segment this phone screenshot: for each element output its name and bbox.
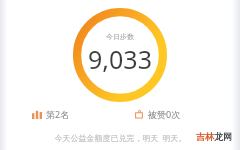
staticText: 龙网: [214, 131, 232, 142]
staticText: 第2名: [46, 108, 70, 120]
button[interactable]: 第2名: [32, 108, 120, 120]
staticText: 9,033: [88, 42, 152, 76]
staticText: 被赞0次: [148, 108, 181, 120]
button[interactable]: 今日步数 9,033: [73, 8, 167, 102]
staticText: 吉林: [196, 131, 214, 142]
staticText: 今日步数: [106, 32, 134, 41]
staticText: 今天公益金额度已兑完，明天 明天。: [54, 132, 187, 143]
button[interactable]: 被赞0次: [134, 108, 220, 120]
